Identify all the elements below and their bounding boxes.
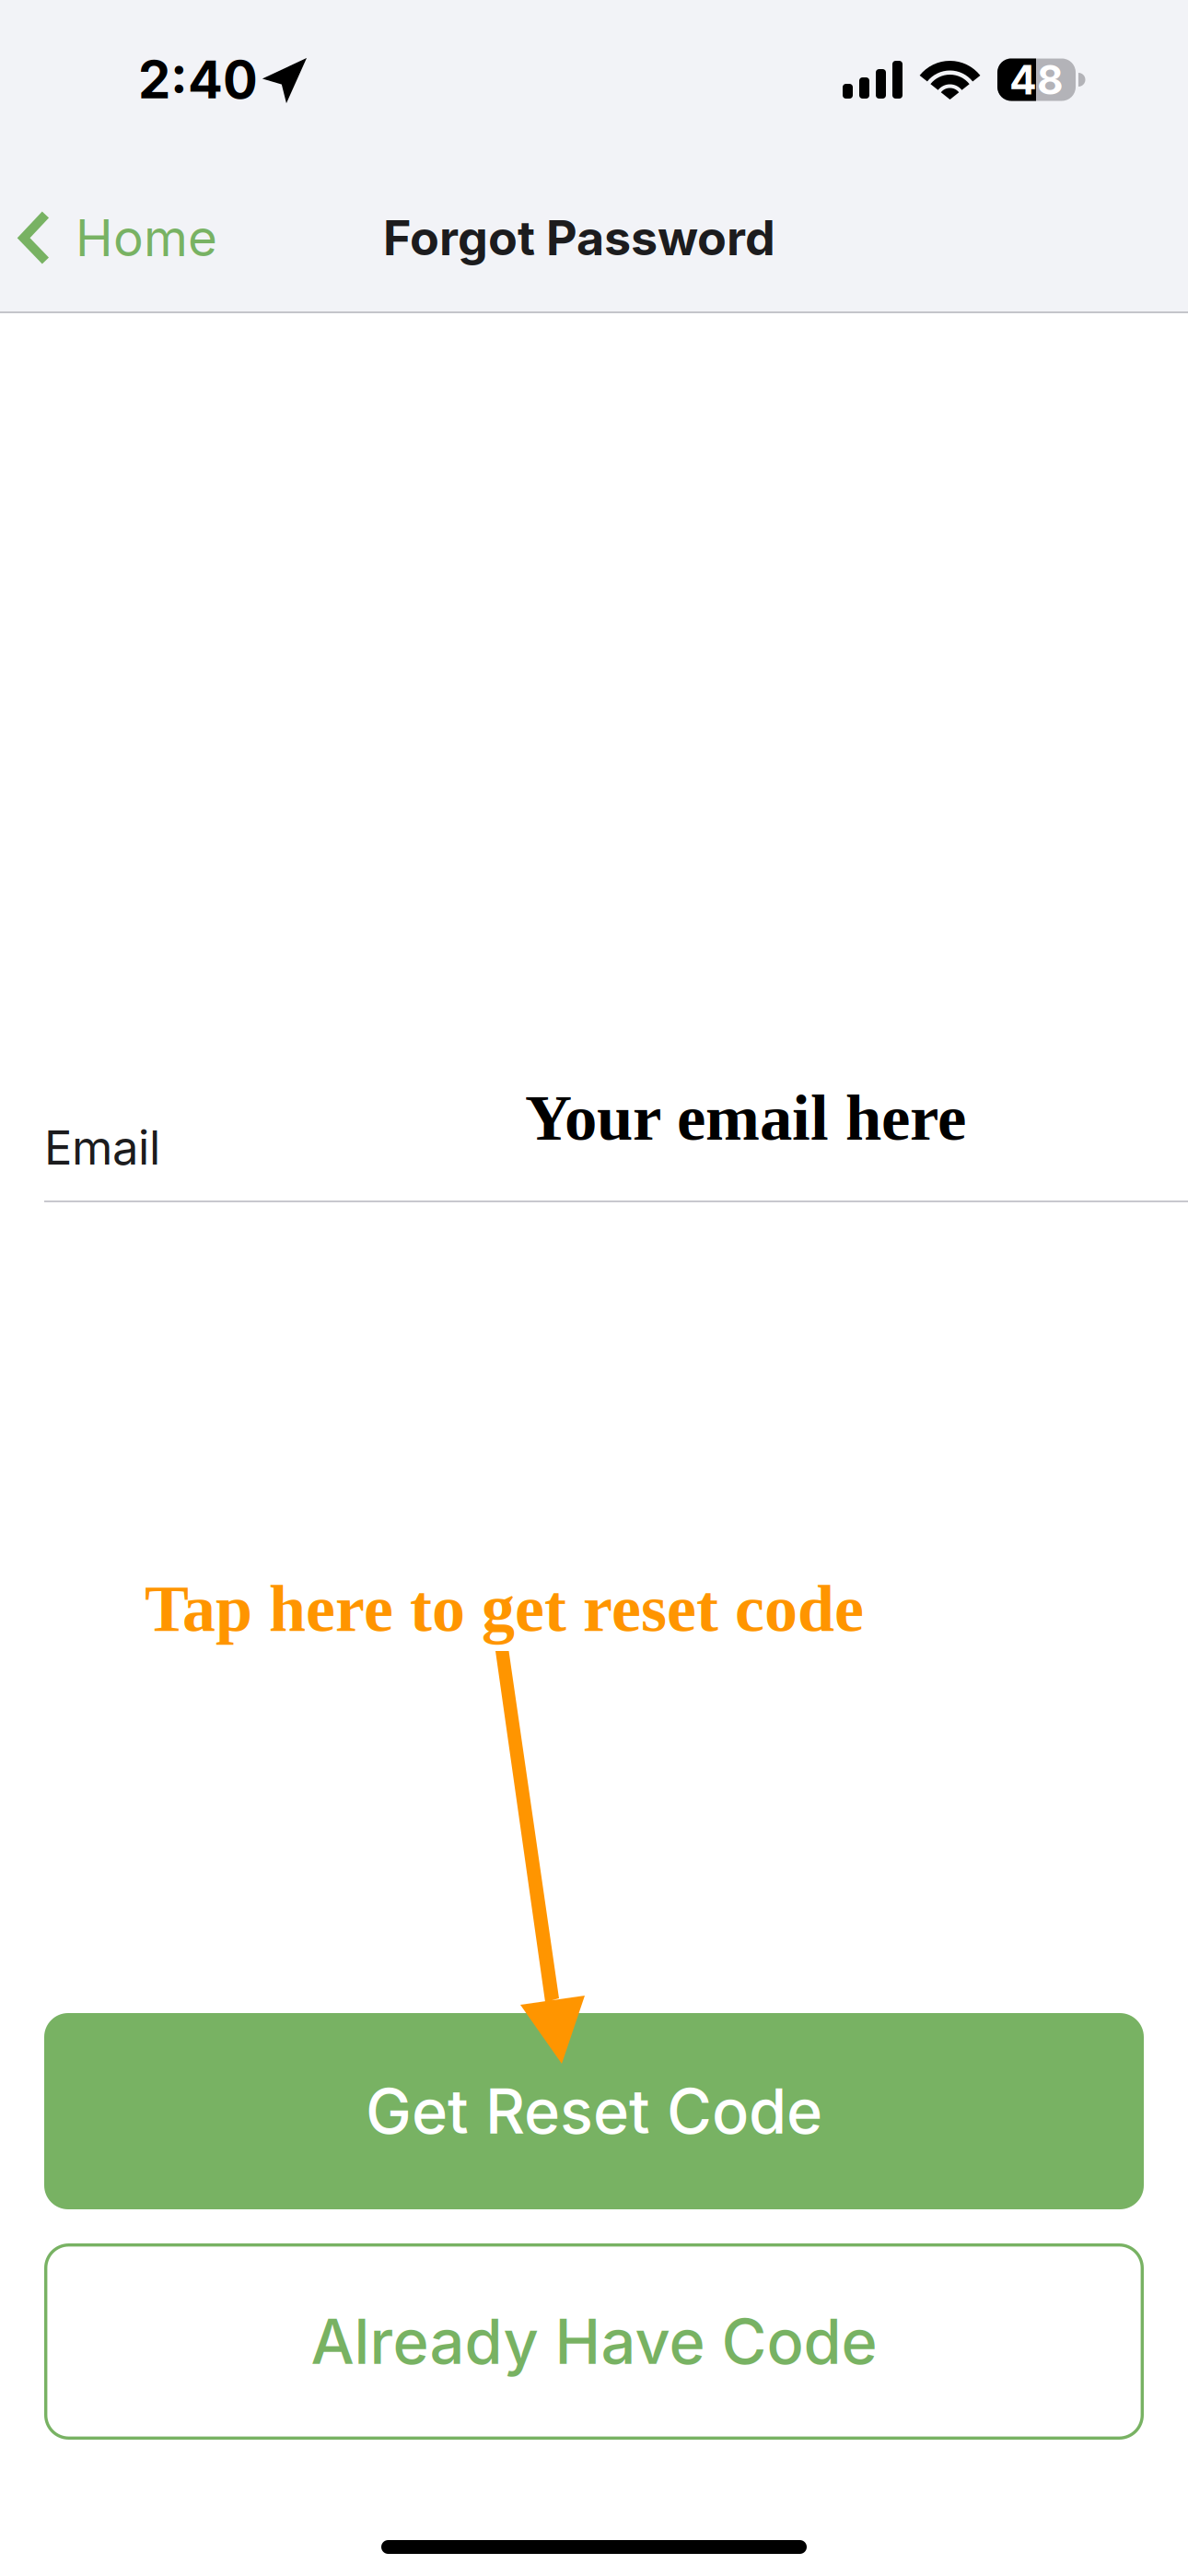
button[interactable]: Email (44, 1069, 1188, 1202)
staticText: 2:40 (138, 48, 258, 111)
staticText: 48 (1009, 55, 1064, 104)
staticText: Already Have Code (311, 2304, 877, 2379)
staticText: Get Reset Code (366, 2074, 822, 2148)
button[interactable]: Get Reset Code (44, 2013, 1144, 2209)
staticText: Email (44, 1119, 160, 1176)
button[interactable]: Back to Home (0, 181, 239, 294)
staticText: Tap here to get reset code (145, 1572, 864, 1645)
staticText: Home (76, 207, 217, 268)
button[interactable]: Already Have Code (44, 2243, 1144, 2440)
staticText: Your email here (525, 1082, 966, 1154)
staticText: Forgot Password (383, 209, 775, 267)
